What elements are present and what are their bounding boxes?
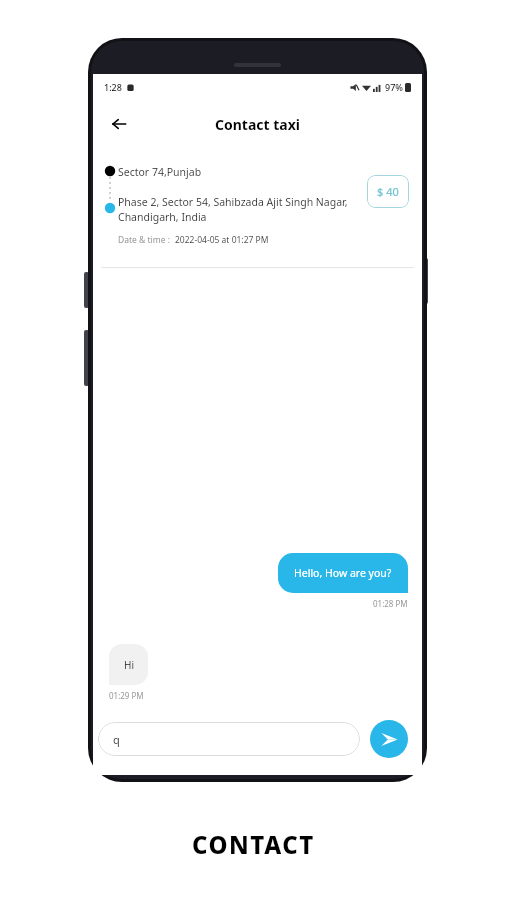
staticText: Phase 2, Sector 54, Sahibzada Ajit Singh… bbox=[118, 195, 350, 224]
staticText: Sector 74,Punjab bbox=[118, 165, 202, 179]
button[interactable]: Send bbox=[370, 720, 408, 758]
staticText: 97% bbox=[385, 81, 403, 93]
staticText: 1:28 bbox=[104, 81, 122, 93]
button[interactable]: $ 40 bbox=[367, 175, 409, 208]
button[interactable]: Back bbox=[101, 106, 137, 142]
staticText: Date & time : bbox=[118, 234, 175, 246]
button[interactable]: Hello, How are you? bbox=[278, 553, 408, 593]
staticText: Hello, How are you? bbox=[294, 566, 392, 580]
staticText: CONTACT bbox=[192, 828, 315, 861]
button[interactable]: Hi bbox=[109, 644, 148, 685]
staticText: $ 40 bbox=[377, 184, 399, 199]
staticText: 01:29 PM bbox=[109, 690, 144, 701]
staticText: 2022-04-05 at 01:27 PM bbox=[175, 234, 269, 246]
staticText: Hi bbox=[124, 658, 134, 672]
staticText: 01:28 PM bbox=[373, 598, 408, 609]
staticText: Contact taxi bbox=[215, 115, 300, 134]
button[interactable]: q bbox=[98, 722, 360, 756]
staticText: q bbox=[113, 732, 120, 747]
